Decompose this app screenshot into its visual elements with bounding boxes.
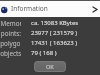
staticText: objects: (0, 49, 21, 58)
staticText: OK (46, 63, 54, 71)
staticText: polygons: (0, 39, 21, 48)
staticText: Information (11, 4, 48, 13)
staticText: Memory: (0, 19, 21, 28)
staticText: points: (0, 29, 21, 38)
staticText: 79 ( 168 ) (31, 49, 57, 57)
staticText: ca. 13083 KBytes (31, 19, 79, 27)
staticText: 23977 ( 231579 ) (31, 29, 78, 37)
staticText: 17431 ( 163623 ) (31, 39, 78, 47)
button[interactable]: OK (34, 61, 66, 72)
button[interactable]: Expand (90, 4, 100, 14)
